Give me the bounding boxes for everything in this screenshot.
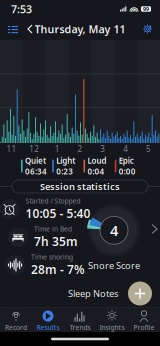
- button[interactable]: 4: [88, 204, 140, 272]
- staticText: 0:23: [56, 166, 73, 177]
- staticText: Snore Score: [88, 259, 140, 272]
- button[interactable]: Back: [25, 20, 35, 38]
- staticText: Session statistics: [40, 180, 120, 193]
- button[interactable]: Sleep Notes: [68, 287, 118, 300]
- button[interactable]: Add sleep note: [128, 281, 152, 305]
- staticText: Loud: [88, 155, 107, 166]
- staticText: 7h 35m: [34, 233, 78, 249]
- staticText: 4: [110, 221, 118, 240]
- staticText: 99: [143, 5, 149, 13]
- staticText: Trends: [69, 323, 90, 332]
- staticText: Results: [36, 323, 59, 332]
- button[interactable]: Settings: [140, 19, 155, 38]
- staticText: 5: [146, 144, 151, 154]
- staticText: 4: [123, 144, 128, 154]
- staticText: 7:53: [11, 2, 32, 16]
- staticText: 3: [100, 144, 105, 154]
- staticText: 0:04: [88, 166, 105, 177]
- staticText: Insights: [99, 323, 124, 332]
- staticText: 0:00: [119, 166, 136, 177]
- staticText: Profile: [133, 323, 154, 332]
- staticText: Thursday, May 11: [34, 22, 125, 36]
- staticText: Time in Bed: [34, 225, 72, 233]
- staticText: 12: [29, 144, 39, 154]
- staticText: Results: [36, 323, 59, 331]
- button[interactable]: Results: [32, 307, 64, 335]
- staticText: 06:34: [25, 166, 47, 177]
- button[interactable]: Trends: [64, 307, 96, 335]
- staticText: Started / Stopped: [25, 197, 80, 205]
- staticText: Epic: [119, 155, 134, 166]
- staticText: Light: [56, 155, 75, 166]
- button[interactable]: Insights: [96, 307, 128, 335]
- staticText: 11: [6, 144, 16, 154]
- staticText: Time snoring: [31, 253, 73, 261]
- button[interactable]: Menu: [5, 20, 21, 38]
- staticText: 10:05 - 5:40: [25, 205, 90, 221]
- staticText: Sleep Notes: [68, 287, 118, 300]
- button[interactable]: Profile: [128, 307, 160, 335]
- staticText: 28m - 7%: [31, 261, 85, 277]
- staticText: Quiet: [25, 155, 46, 166]
- button[interactable]: Snore score details: [149, 218, 160, 239]
- staticText: Record: [5, 323, 27, 332]
- staticText: 1: [55, 144, 60, 154]
- button[interactable]: Record: [0, 307, 32, 335]
- staticText: 2: [77, 144, 82, 154]
